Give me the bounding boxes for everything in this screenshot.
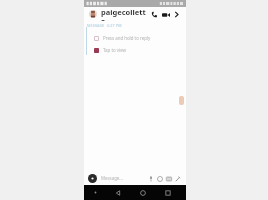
button[interactable]: Gallery (164, 174, 173, 183)
staticText: Message... (101, 175, 146, 181)
button[interactable]: Audio call (149, 9, 160, 20)
button[interactable]: Hide keyboard (84, 185, 106, 200)
staticText: MESSAGE 3:27 PM (87, 23, 122, 28)
button[interactable]: Tap to view (84, 44, 186, 56)
button[interactable]: Press and hold to reply (84, 32, 186, 44)
button[interactable]: Video call (160, 9, 171, 20)
button[interactable]: Stickers (155, 174, 164, 183)
button[interactable]: Home (130, 185, 155, 200)
button[interactable]: More options (171, 9, 182, 20)
button[interactable]: Voice message (146, 174, 155, 183)
button[interactable]: Recent apps (155, 185, 180, 200)
button[interactable]: Profile picture (89, 10, 97, 18)
staticText: Press and hold to reply (103, 35, 151, 41)
button[interactable]: Draw (173, 174, 182, 183)
button[interactable]: Camera (88, 174, 97, 183)
staticText: paigecollett3 (101, 7, 149, 21)
staticText: Tap to view (103, 47, 126, 53)
button[interactable]: Back (106, 185, 130, 200)
